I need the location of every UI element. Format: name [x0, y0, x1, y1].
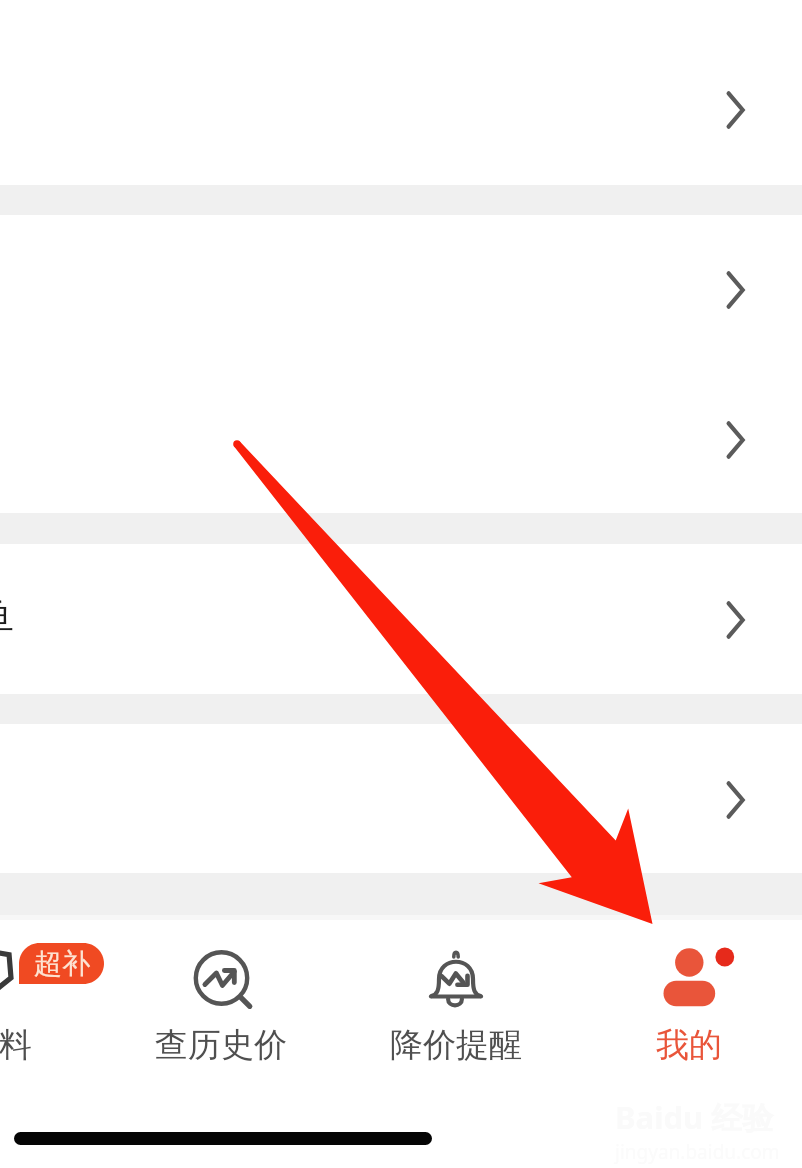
button[interactable]: 降价提醒 — [366, 920, 546, 1100]
button[interactable]: 鱼 — [0, 590, 14, 639]
other: Open — [718, 772, 762, 828]
other: Open — [718, 412, 762, 468]
staticText: 我的 — [656, 1024, 722, 1066]
staticText: 降价提醒 — [390, 1024, 522, 1066]
other: Open — [718, 262, 762, 318]
button[interactable]: 查历史价 — [131, 920, 311, 1100]
staticText: 爆料 — [0, 1024, 32, 1066]
button[interactable] — [0, 0, 802, 185]
button[interactable] — [0, 724, 802, 873]
staticText: 超补 — [34, 946, 90, 981]
other: Open — [718, 592, 762, 648]
button[interactable] — [0, 544, 802, 694]
other: Open — [718, 82, 762, 138]
staticText: 鱼 — [0, 590, 14, 639]
button[interactable] — [0, 215, 802, 513]
staticText: 查历史价 — [155, 1024, 287, 1066]
button[interactable]: 我的 — [599, 920, 779, 1100]
button[interactable]: 超补 — [0, 920, 120, 1100]
